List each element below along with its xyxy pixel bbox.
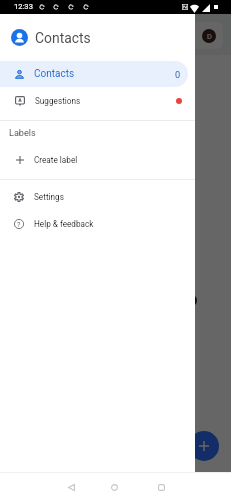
staticText: Contacts (35, 30, 91, 46)
staticText: 12:33 (14, 2, 33, 11)
button[interactable]: Create contact (189, 431, 219, 461)
staticText: D (207, 32, 212, 41)
staticText: Suggestions (35, 96, 81, 106)
button[interactable]: Account (202, 29, 216, 43)
button[interactable]: Settings (0, 183, 195, 210)
button[interactable]: ? (0, 210, 195, 237)
button[interactable]: Contacts (0, 61, 188, 87)
staticText: ? (17, 220, 21, 228)
staticText: Help & feedback (34, 219, 94, 229)
staticText: 0 (175, 69, 181, 80)
button[interactable]: Recent apps (150, 476, 172, 498)
staticText: Settings (34, 192, 64, 202)
button[interactable]: Home (103, 476, 125, 498)
staticText: Contacts (34, 68, 75, 80)
staticText: Labels (9, 128, 36, 139)
button[interactable]: Suggestions (0, 87, 195, 114)
button[interactable]: Back (60, 476, 82, 498)
button[interactable]: Account (12, 22, 223, 49)
staticText: Create label (34, 155, 78, 165)
button[interactable]: Create label (0, 146, 195, 173)
